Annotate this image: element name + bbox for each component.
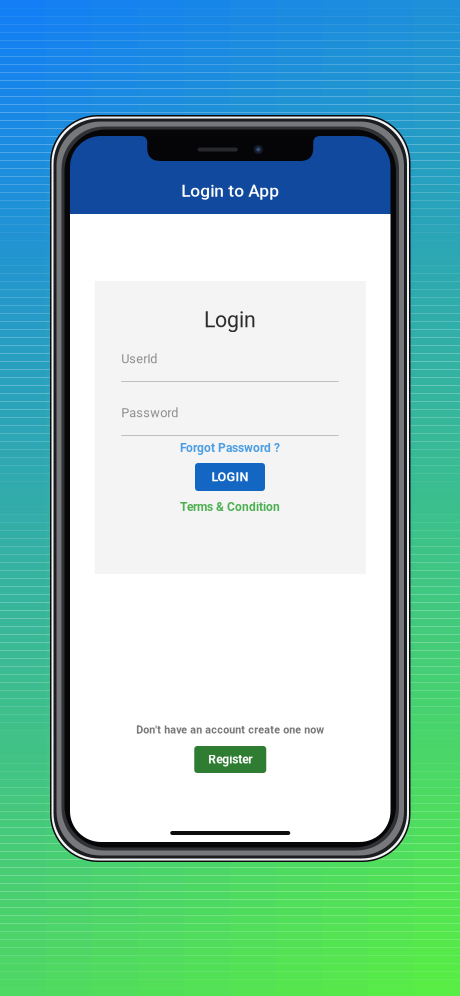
staticText: Terms & Condition (180, 500, 280, 514)
staticText: Login (204, 307, 256, 332)
staticText: Forgot Password ? (180, 441, 280, 455)
button[interactable]: Terms & Condition (121, 499, 339, 515)
button[interactable]: Register (194, 746, 266, 773)
button[interactable]: Forgot Password ? (121, 440, 339, 456)
staticText: Register (208, 752, 252, 767)
staticText: UserId (121, 352, 157, 366)
staticText: LOGIN (211, 470, 248, 484)
staticText: Login to App (181, 181, 279, 201)
staticText: Password (121, 406, 178, 420)
staticText: Don't have an account create one now (136, 723, 324, 736)
button[interactable]: LOGIN (195, 463, 265, 491)
